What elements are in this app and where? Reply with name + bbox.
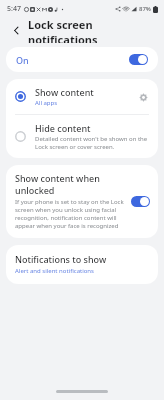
button[interactable]: Settings bbox=[134, 88, 152, 106]
button[interactable]: Show content when unlocked bbox=[6, 165, 158, 238]
button[interactable]: On bbox=[6, 47, 158, 72]
button[interactable]: Notifications to show bbox=[6, 245, 158, 284]
staticText: 5:47 bbox=[7, 4, 21, 14]
staticText: 87% bbox=[139, 5, 151, 13]
staticText: Alert and silent notifications bbox=[15, 267, 94, 275]
button[interactable]: Back bbox=[7, 21, 25, 39]
staticText: If your phone is set to stay on the Lock… bbox=[15, 198, 126, 230]
staticText: Show content when unlocked bbox=[15, 172, 126, 196]
button[interactable]: Show content bbox=[6, 79, 158, 114]
staticText: Detailed content won't be shown on the L… bbox=[35, 135, 150, 151]
staticText: Notifications to show bbox=[15, 253, 107, 265]
staticText: On bbox=[16, 54, 29, 66]
staticText: Lock screen notifications bbox=[28, 17, 164, 43]
staticText: Show content bbox=[35, 86, 94, 98]
button[interactable]: Hide content bbox=[6, 115, 158, 158]
staticText: All apps bbox=[35, 99, 58, 107]
staticText: Hide content bbox=[35, 122, 91, 134]
